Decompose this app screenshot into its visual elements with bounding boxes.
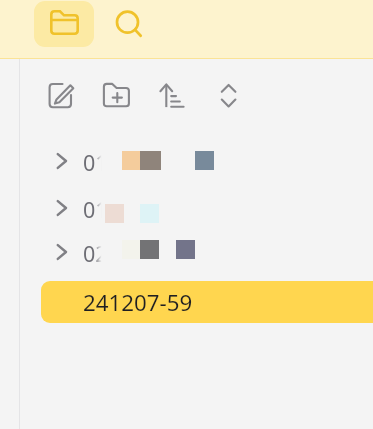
button[interactable]: Folder 02: [20, 231, 373, 273]
button[interactable]: Search: [106, 1, 150, 45]
button[interactable]: Expand: [57, 244, 67, 260]
button[interactable]: Expand: [57, 153, 67, 169]
staticText: 01: [83, 195, 103, 221]
button[interactable]: Expand all: [214, 80, 244, 110]
staticText: 01: [83, 148, 103, 174]
button[interactable]: Folder 01: [20, 140, 373, 182]
staticText: 241207-59: [83, 287, 193, 317]
button[interactable]: Edit: [47, 79, 77, 109]
button[interactable]: Files: [34, 1, 94, 47]
staticText: 02: [83, 239, 103, 265]
button[interactable]: Expand: [57, 200, 67, 216]
button[interactable]: Folder 01: [20, 187, 373, 229]
button[interactable]: Sort: [158, 80, 188, 110]
button[interactable]: New folder: [101, 80, 131, 110]
button[interactable]: 241207-59: [41, 281, 373, 323]
